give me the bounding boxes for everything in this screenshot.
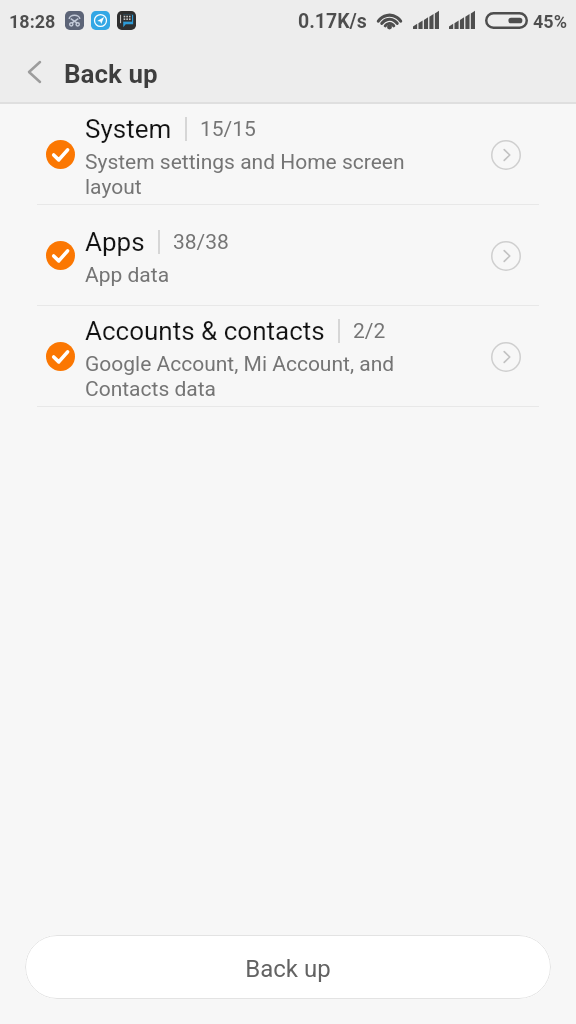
- button[interactable]: Back: [0, 40, 58, 104]
- staticText: 15/15: [200, 117, 256, 142]
- staticText: 38/38: [173, 230, 229, 255]
- staticText: App data: [85, 263, 170, 288]
- button[interactable]: Toggle System selection: [46, 140, 75, 169]
- staticText: 18:28: [9, 11, 56, 32]
- staticText: 0.17K/s: [298, 10, 367, 33]
- button[interactable]: Toggle Apps selection: [0, 205, 576, 306]
- staticText: Back up: [245, 955, 331, 983]
- staticText: System settings and Home screen layout: [85, 150, 421, 200]
- staticText: 45%: [533, 11, 567, 32]
- staticText: Apps: [85, 227, 145, 257]
- button[interactable]: Toggle Accounts & contacts selection: [46, 342, 75, 371]
- button[interactable]: Toggle Apps selection: [46, 241, 75, 270]
- staticText: System: [85, 114, 172, 144]
- staticText: Google Account, Mi Account, and Contacts…: [85, 352, 421, 402]
- staticText: 2/2: [353, 319, 386, 344]
- button[interactable]: Back up: [25, 935, 551, 999]
- button[interactable]: Toggle Accounts & contacts selection: [0, 306, 576, 407]
- button[interactable]: Open Accounts & contacts details: [491, 342, 521, 372]
- staticText: Accounts & contacts: [85, 316, 325, 346]
- button[interactable]: Toggle System selection: [0, 104, 576, 205]
- button[interactable]: Open System details: [491, 140, 521, 170]
- button[interactable]: Open Apps details: [491, 241, 521, 271]
- staticText: Back up: [64, 59, 158, 89]
